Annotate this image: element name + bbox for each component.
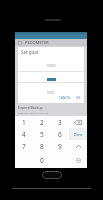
button[interactable]: 9 (51, 140, 69, 152)
staticText: 1 (22, 118, 26, 127)
button[interactable]: 0 (33, 152, 51, 168)
button[interactable]: CANCEL (58, 95, 72, 101)
button[interactable]: 8 (33, 140, 51, 152)
staticText: Export/Backup (18, 105, 43, 110)
staticText: PEDOMETER (25, 40, 49, 45)
button[interactable]: 3 (51, 116, 69, 128)
staticText: 2 (40, 118, 44, 127)
staticText: 5000 (47, 91, 55, 95)
button[interactable]: Shift (69, 140, 87, 152)
staticText: 0 (40, 156, 44, 165)
staticText: Done (74, 132, 83, 137)
button[interactable]: 2 (33, 116, 51, 128)
button[interactable]: 6 (51, 128, 69, 140)
button[interactable]: Keyboard options (69, 152, 87, 168)
staticText: 10000 (46, 63, 56, 68)
button[interactable]: Home (42, 171, 62, 179)
button[interactable]: PEDOMETER (15, 39, 87, 46)
staticText: 6 (58, 130, 62, 139)
button[interactable]: 7 (15, 140, 33, 152)
staticText: CANCEL (59, 96, 71, 100)
staticText: 7 (22, 142, 26, 151)
button[interactable]: 4 (15, 128, 33, 140)
staticText: Save your data to a CSV file (18, 111, 49, 114)
button[interactable]: Export/Backup (18, 105, 87, 114)
staticText: 8 (40, 142, 44, 151)
staticText: Set goal (21, 49, 38, 55)
staticText: 3 (58, 118, 62, 127)
button[interactable]: OK (75, 95, 82, 101)
button[interactable]: 5 (33, 128, 51, 140)
button[interactable]: Done (69, 128, 87, 140)
staticText: 5 (40, 130, 44, 139)
button[interactable]: 1 (15, 116, 33, 128)
staticText: OK (76, 96, 81, 100)
button[interactable]: Backspace (69, 116, 87, 128)
staticText: 9 (58, 142, 62, 151)
staticText: 4 (22, 130, 26, 139)
